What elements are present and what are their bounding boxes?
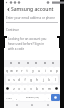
button[interactable]: n (40, 85, 46, 92)
button[interactable]: Back (45, 102, 51, 108)
button[interactable]: k (46, 76, 52, 83)
button[interactable]: b (34, 85, 40, 92)
staticText: m (48, 87, 51, 91)
button[interactable]: Enter (51, 94, 60, 101)
button[interactable]: z (11, 85, 16, 92)
button[interactable]: p (54, 67, 60, 74)
staticText: d (18, 78, 20, 82)
button[interactable]: Suggestion (17, 61, 21, 65)
staticText: g (30, 78, 32, 82)
staticText: u (38, 69, 40, 73)
staticText: x (18, 87, 20, 91)
staticText: q (6, 69, 8, 73)
staticText: b (36, 87, 38, 91)
staticText: . (48, 96, 49, 100)
staticText: i (45, 69, 46, 73)
staticText: Continue (6, 28, 19, 32)
staticText: ?123 (6, 96, 12, 99)
staticText: l (55, 78, 56, 82)
staticText: Looking for an account you (8, 37, 47, 41)
staticText: English (UK) (26, 96, 39, 99)
staticText: Samsung account (11, 6, 54, 13)
button[interactable]: Suggestion (34, 61, 38, 65)
button[interactable]: f (22, 76, 28, 83)
button[interactable]: w (9, 67, 14, 74)
button[interactable]: a (6, 76, 11, 83)
staticText: e (16, 69, 18, 73)
button[interactable]: h (34, 76, 40, 83)
button[interactable]: y (30, 67, 36, 74)
staticText: , (16, 96, 17, 100)
staticText: t (26, 69, 28, 73)
button[interactable]: r (19, 67, 24, 74)
button[interactable]: m (46, 85, 52, 92)
staticText: j (43, 78, 44, 82)
button[interactable]: Recents (14, 102, 20, 108)
staticText: y (32, 69, 34, 73)
button[interactable]: l (52, 76, 58, 83)
button[interactable]: o (48, 67, 54, 74)
button[interactable]: t (24, 67, 30, 74)
button[interactable]: Backspace (52, 85, 60, 92)
staticText: a (8, 78, 10, 82)
button[interactable]: j (40, 76, 46, 83)
staticText: with a code (8, 47, 25, 51)
staticText: f (24, 78, 26, 82)
button[interactable]: Back (5, 6, 11, 12)
button[interactable]: v (28, 85, 34, 92)
staticText: h (36, 78, 38, 82)
staticText: r (21, 69, 23, 73)
staticText: p (56, 69, 58, 73)
staticText: z (13, 87, 15, 91)
staticText: have used before? Sign in (8, 42, 45, 46)
button[interactable]: Home (29, 102, 35, 108)
staticText: v (30, 87, 32, 91)
staticText: s (13, 78, 15, 82)
button[interactable]: u (36, 67, 42, 74)
button[interactable]: Suggestion (51, 61, 55, 65)
staticText: o (50, 69, 52, 73)
button[interactable]: s (11, 76, 16, 83)
button[interactable]: i (42, 67, 48, 74)
staticText: c (24, 87, 26, 91)
button[interactable]: d (16, 76, 22, 83)
button[interactable]: , (13, 94, 19, 101)
button[interactable]: Suggestion (26, 61, 30, 65)
button[interactable]: x (16, 85, 22, 92)
button[interactable]: Looking for an account you (8, 37, 58, 51)
button[interactable]: Suggestion (9, 61, 13, 65)
button[interactable]: c (22, 85, 28, 92)
staticText: k (48, 78, 50, 82)
button[interactable]: Shift (4, 85, 11, 92)
staticText: Enter your email address or phone number (6, 16, 58, 20)
button[interactable]: e (14, 67, 19, 74)
button[interactable]: g (28, 76, 34, 83)
staticText: n (42, 87, 44, 91)
button[interactable]: q (4, 67, 9, 74)
button[interactable]: Suggestion (43, 61, 47, 65)
button[interactable]: English (UK) (19, 94, 45, 101)
staticText: w (10, 69, 13, 73)
button[interactable]: ?123 (4, 94, 13, 101)
button[interactable]: . (45, 94, 51, 101)
